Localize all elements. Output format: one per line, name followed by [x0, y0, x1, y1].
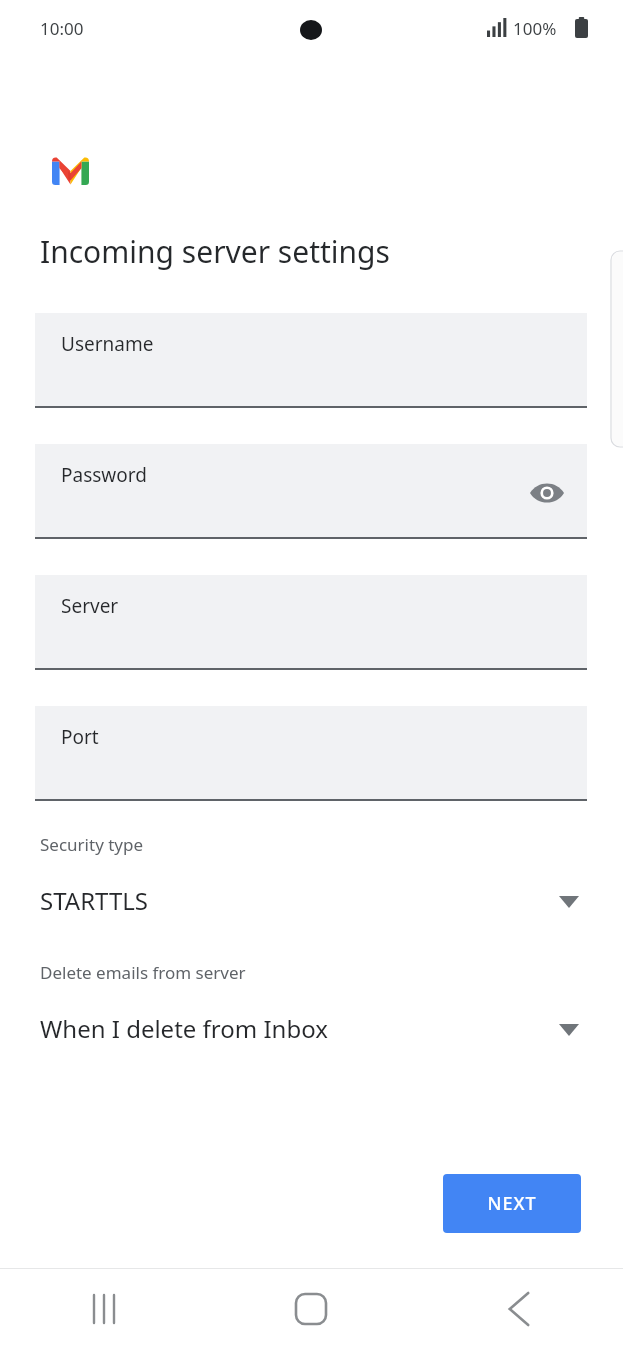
- staticText: STARTTLS: [40, 884, 149, 917]
- button[interactable]: Delete emails from server: [40, 961, 580, 1049]
- staticText: 100%: [513, 17, 557, 40]
- button[interactable]: Username: [35, 313, 587, 408]
- staticText: Incoming server settings: [40, 231, 390, 272]
- button[interactable]: Back: [415, 1269, 623, 1349]
- staticText: Delete emails from server: [40, 961, 246, 984]
- staticText: 10:00: [40, 17, 84, 40]
- staticText: Port: [61, 724, 99, 750]
- button[interactable]: NEXT: [443, 1174, 581, 1233]
- staticText: Server: [61, 593, 119, 619]
- staticText: Password: [61, 462, 147, 488]
- button[interactable]: Server: [35, 575, 587, 670]
- staticText: NEXT: [487, 1191, 537, 1216]
- staticText: When I delete from Inbox: [40, 1012, 328, 1045]
- staticText: Username: [61, 331, 154, 357]
- button[interactable]: Password: [35, 444, 587, 539]
- button[interactable]: Home: [207, 1269, 415, 1349]
- button[interactable]: Recents: [0, 1269, 207, 1349]
- button[interactable]: Port: [35, 706, 587, 801]
- button[interactable]: Show password: [521, 467, 573, 519]
- button[interactable]: Security type: [40, 833, 580, 921]
- staticText: Security type: [40, 833, 144, 856]
